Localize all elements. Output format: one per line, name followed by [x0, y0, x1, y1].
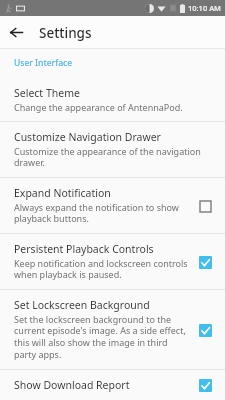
staticText: Select Theme: [14, 86, 80, 100]
staticText: Set Lockscreen Background: [14, 298, 150, 312]
button[interactable]: Show Download Report: [0, 370, 225, 400]
staticText: Keep notification and lockscreen control…: [14, 257, 191, 281]
staticText: Show Download Report: [14, 378, 130, 392]
staticText: Expand Notification: [14, 186, 111, 200]
button[interactable]: Expand Notification: [0, 178, 225, 233]
staticText: 10:10 AM: [188, 3, 221, 13]
staticText: Settings: [39, 24, 92, 42]
button[interactable]: Checked: [197, 378, 213, 392]
staticText: Customize Navigation Drawer: [14, 130, 161, 144]
staticText: Customize the appearance of the navigati…: [14, 145, 217, 169]
staticText: Set the lockscreen background to the cur…: [14, 313, 191, 361]
button[interactable]: Select Theme: [0, 78, 225, 121]
button[interactable]: Back: [0, 16, 33, 49]
staticText: Always expand the notification to show p…: [14, 201, 191, 225]
button[interactable]: Set Lockscreen Background: [0, 290, 225, 369]
button[interactable]: Persistent Playback Controls: [0, 234, 225, 289]
staticText: Change the appearance of AntennaPod.: [14, 101, 183, 113]
button[interactable]: Customize Navigation Drawer: [0, 122, 225, 177]
button[interactable]: Checked: [197, 254, 213, 270]
staticText: Persistent Playback Controls: [14, 242, 154, 256]
button[interactable]: Checked: [197, 322, 213, 338]
button[interactable]: Unchecked: [197, 198, 213, 214]
staticText: User Interface: [14, 57, 73, 69]
